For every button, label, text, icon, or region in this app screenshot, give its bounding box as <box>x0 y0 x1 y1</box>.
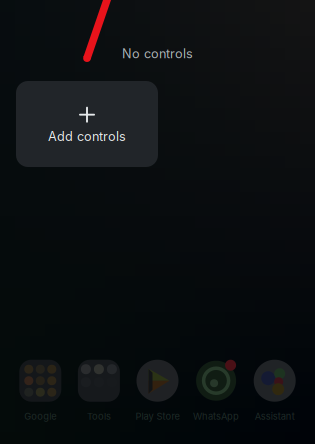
staticText: Assistant <box>255 411 295 422</box>
button[interactable]: Assistant <box>245 360 304 422</box>
button[interactable]: Add controls <box>16 81 158 167</box>
staticText: Add controls <box>48 129 126 144</box>
staticText: WhatsApp <box>193 411 239 422</box>
button[interactable]: Tools <box>70 360 128 422</box>
staticText: Play Store <box>135 411 179 422</box>
button[interactable]: Google <box>11 360 70 422</box>
button[interactable]: WhatsApp <box>187 360 245 422</box>
staticText: No controls <box>122 46 193 61</box>
staticText: Google <box>24 411 56 422</box>
button[interactable]: Play Store <box>128 360 187 422</box>
staticText: Tools <box>87 411 111 422</box>
